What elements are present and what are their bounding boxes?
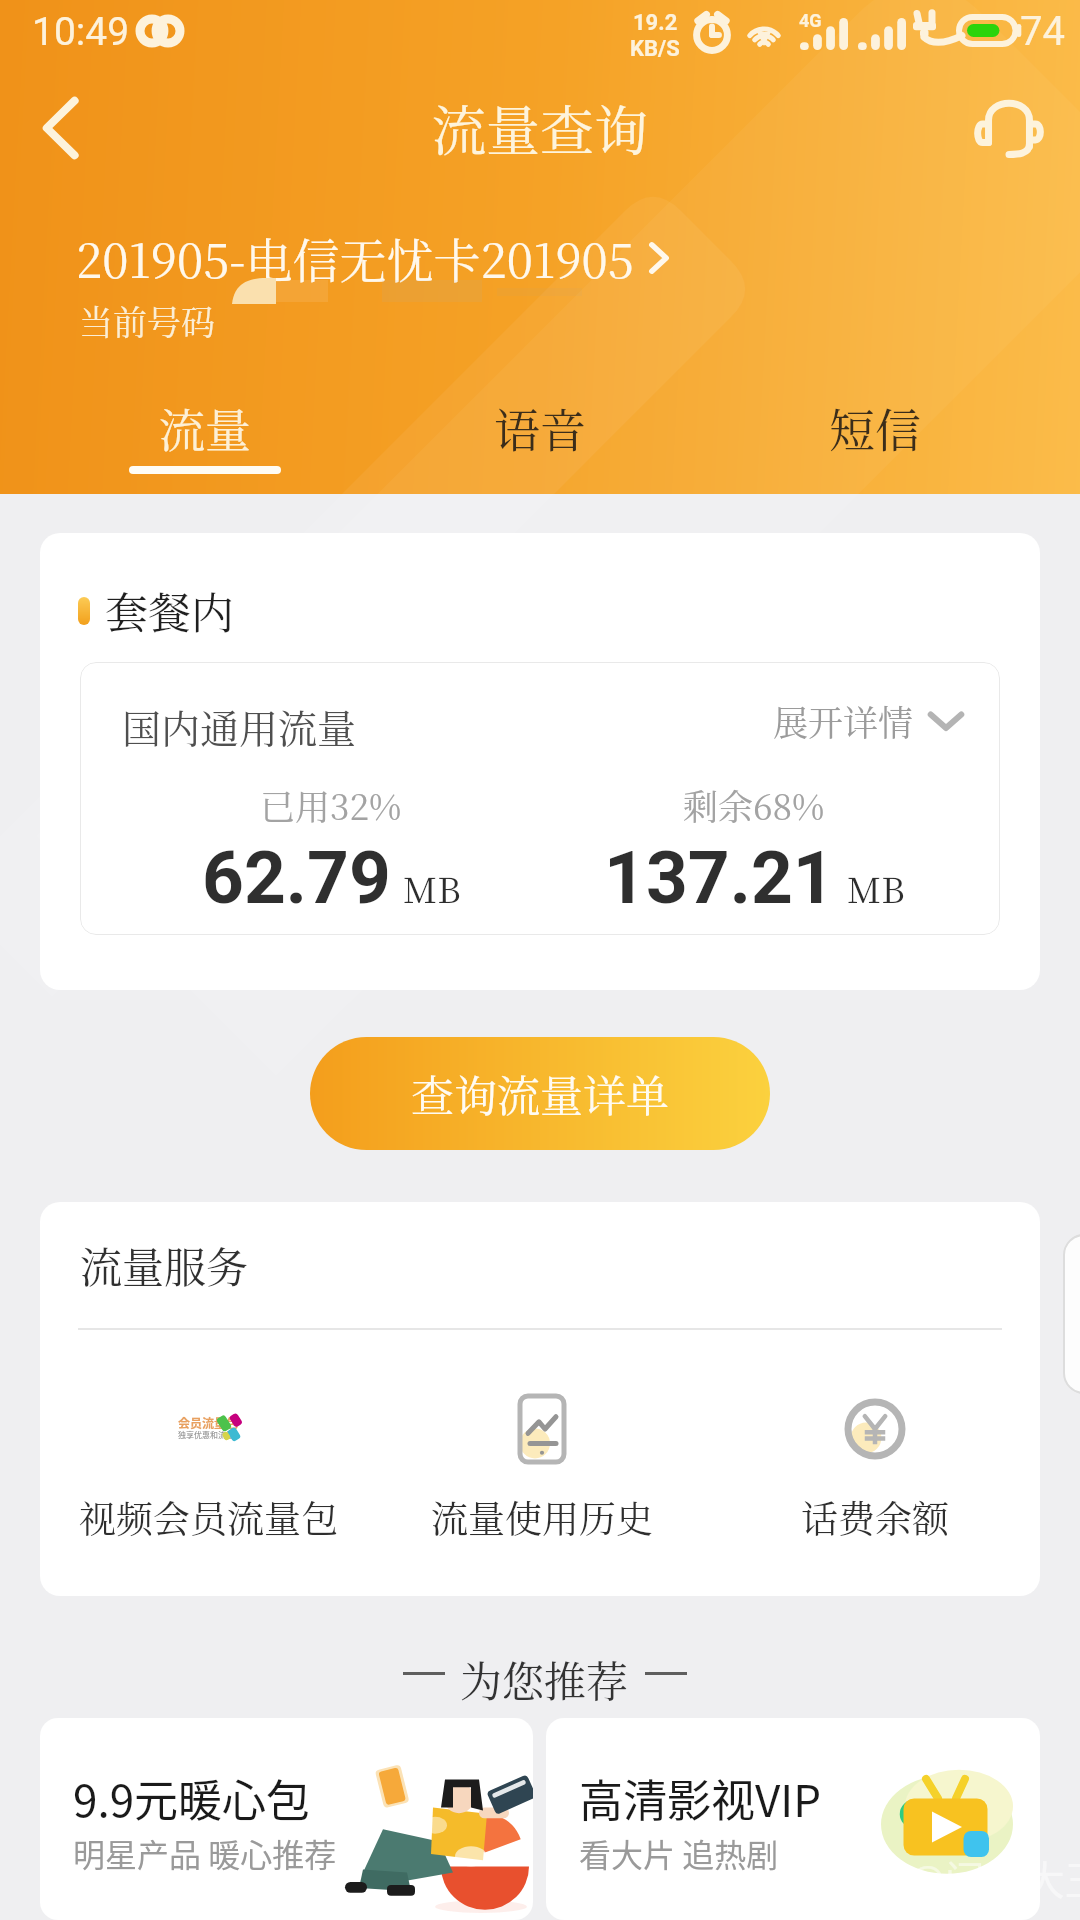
staticText: 74	[1020, 8, 1065, 55]
staticText: MB	[847, 863, 905, 913]
button[interactable]: 高清影视VIP	[546, 1718, 1040, 1920]
staticText: 流量服务	[80, 1235, 249, 1295]
button[interactable]: 短信	[708, 394, 1042, 466]
button[interactable]: 流量使用历史	[372, 1384, 712, 1543]
button[interactable]: 展开详情	[773, 696, 963, 746]
staticText: 137.21	[604, 835, 835, 921]
staticText: 高清影视VIP	[579, 1766, 822, 1830]
staticText: 剩余68%	[683, 780, 825, 830]
staticText: 4G	[799, 10, 822, 31]
staticText: 短信	[829, 394, 921, 460]
staticText: 查询流量详单	[411, 1063, 669, 1125]
staticText: 展开详情	[773, 696, 914, 746]
staticText: 62.79	[202, 835, 391, 921]
staticText: 为您推荐	[460, 1649, 629, 1709]
staticText: 会员流量包	[178, 1414, 239, 1431]
button[interactable]: 9.9元暖心包	[40, 1718, 533, 1920]
staticText: 10:49	[32, 9, 130, 55]
button[interactable]: 会员流量包	[40, 1384, 378, 1543]
button[interactable]: 语音	[373, 394, 707, 466]
staticText: 201905-电信无忧卡201905	[76, 224, 634, 292]
staticText: KB/S	[630, 36, 680, 62]
staticText: 明星产品 暖心推荐	[73, 1830, 337, 1876]
button[interactable]: 流量	[38, 394, 372, 474]
staticText: 套餐内	[105, 580, 234, 642]
staticText: MB	[403, 863, 461, 913]
button[interactable]: 话费余额	[705, 1384, 1040, 1543]
staticText: 看大片 追热剧	[579, 1830, 779, 1876]
button[interactable]: Customer service	[964, 83, 1054, 173]
staticText: 流量使用历史	[431, 1490, 653, 1543]
staticText: 流量查询	[432, 89, 648, 167]
staticText: 话费余额	[801, 1490, 949, 1543]
staticText: 国内通用流量	[122, 698, 357, 754]
button[interactable]: Back	[16, 83, 106, 173]
staticText: 9.9元暖心包	[73, 1766, 311, 1830]
staticText: 独享优惠和流量	[178, 1429, 234, 1441]
button[interactable]: 201905-电信无忧卡201905	[76, 224, 674, 292]
staticText: 语音	[494, 394, 586, 460]
staticText: 当前号码	[79, 296, 215, 345]
button[interactable]: 查询流量详单	[310, 1037, 770, 1150]
staticText: 流量	[159, 394, 251, 460]
staticText: 已用32%	[260, 780, 402, 830]
staticText: 19.2	[633, 10, 678, 36]
staticText: 视频会员流量包	[79, 1490, 338, 1543]
staticText: 知乎 @问题大王	[818, 1849, 1080, 1907]
